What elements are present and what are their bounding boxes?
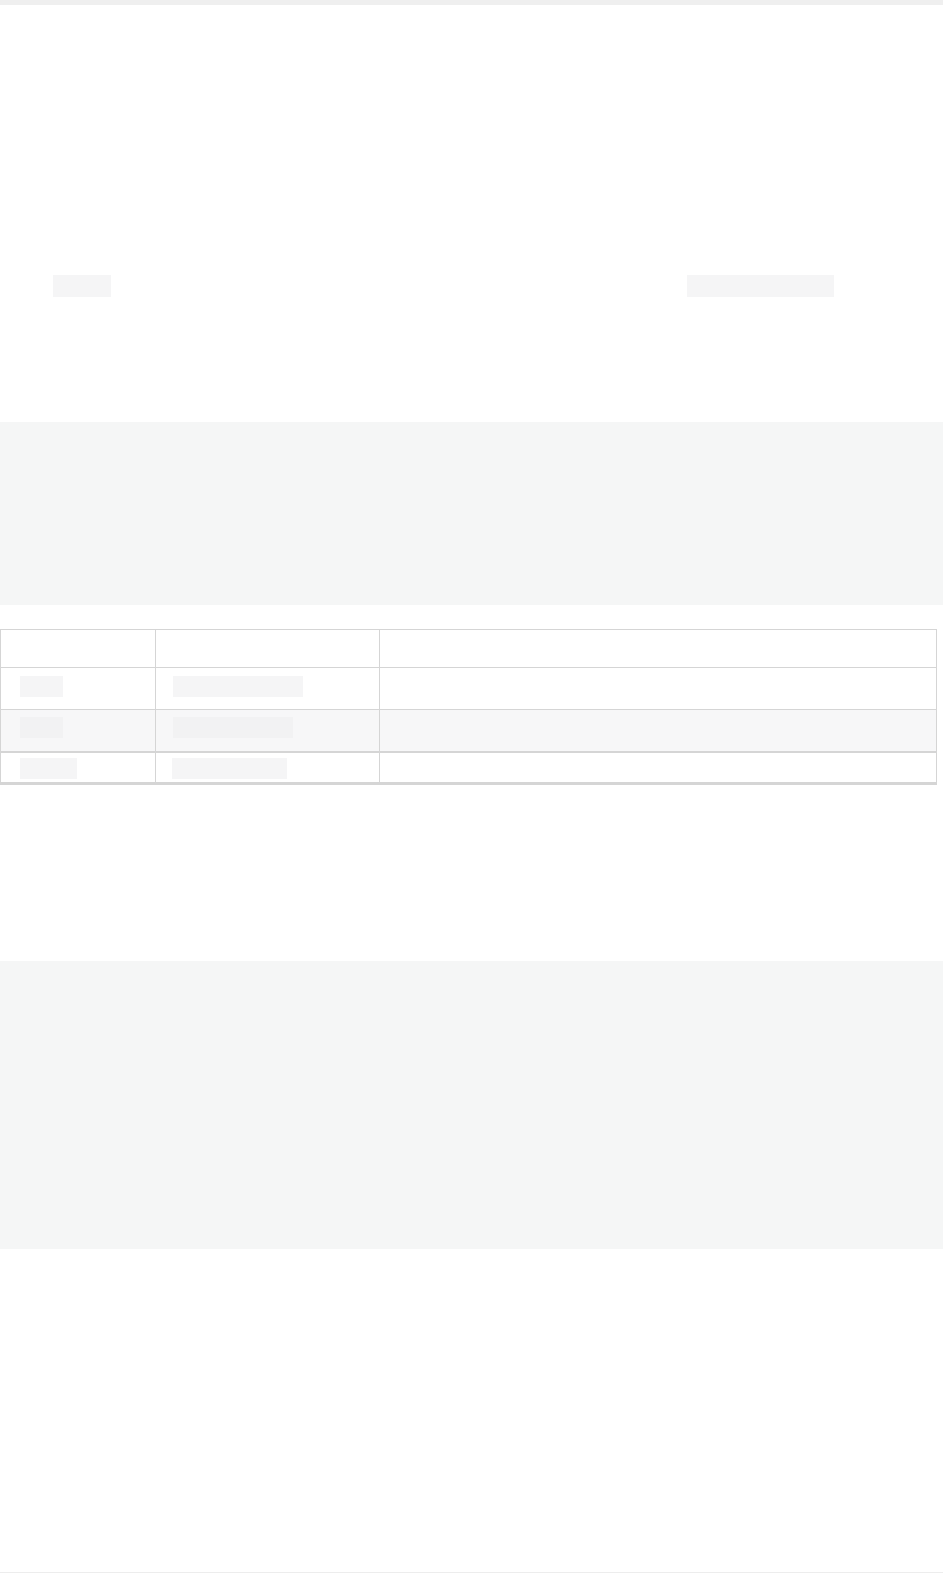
button[interactable]: Row 3 [0,753,937,782]
button[interactable]: Row 1 [0,668,937,709]
